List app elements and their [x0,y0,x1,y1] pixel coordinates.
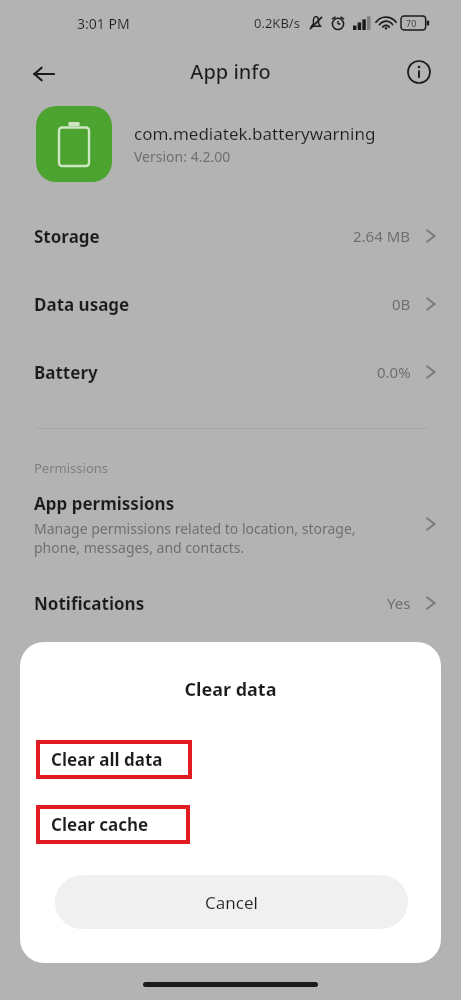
staticText: 2.64 MB [353,226,411,246]
button[interactable]: App details [395,48,443,96]
staticText: Clear cache [51,813,149,836]
staticText: Permissions [34,459,109,477]
button[interactable]: Back [20,50,68,98]
button[interactable]: Clear cache [36,805,190,844]
staticText: Version: 4.2.00 [134,147,231,166]
staticText: 3:01 PM [77,14,130,33]
button[interactable]: Battery [0,344,461,400]
staticText: Manage permissions related to location, … [34,519,356,557]
staticText: Clear data [20,677,441,702]
staticText: com.mediatek.batterywarning [134,122,376,145]
staticText: 70 [406,17,417,29]
staticText: App info [0,58,461,85]
staticText: Notifications [34,592,145,615]
button[interactable]: Cancel [55,875,408,929]
staticText: Cancel [205,891,258,914]
staticText: Storage [34,225,100,248]
button[interactable]: App permissions [0,482,461,566]
staticText: 0.0% [377,362,411,382]
button[interactable]: Clear all data [36,740,192,779]
button[interactable]: Notifications [0,575,461,631]
staticText: 0B [392,294,411,314]
button[interactable]: Data usage [0,276,461,332]
staticText: Battery [34,361,98,384]
button[interactable]: com.mediatek.batterywarning [0,103,461,185]
staticText: App permissions [34,492,175,515]
staticText: 0.2KB/s [254,14,300,32]
staticText: Clear all data [51,748,163,771]
staticText: Yes [387,593,411,613]
staticText: Data usage [34,293,130,316]
button[interactable]: Storage [0,208,461,264]
